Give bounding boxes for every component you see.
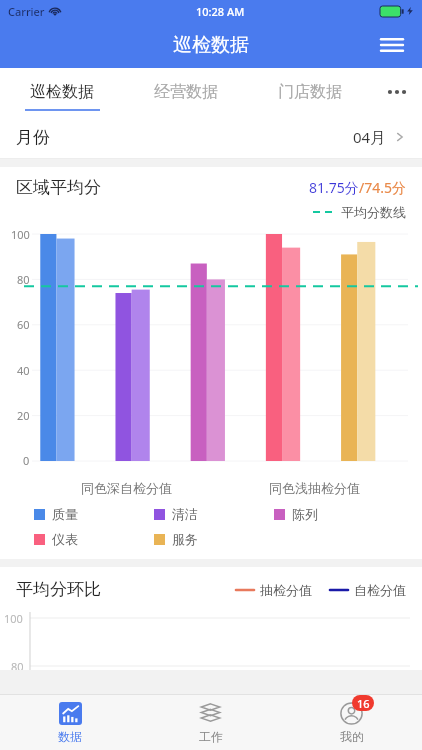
button[interactable]: 巡检数据 — [0, 68, 124, 115]
button[interactable]: 抽检分值 — [236, 582, 312, 598]
staticText: 服务 — [172, 531, 198, 547]
staticText: 陈列 — [292, 506, 318, 522]
staticText: 仪表 — [52, 531, 78, 547]
staticText: 门店数据 — [278, 82, 342, 102]
button[interactable]: 数据 — [0, 695, 140, 750]
staticText: 20 — [17, 408, 30, 423]
staticText: 清洁 — [172, 506, 198, 522]
staticText: Carrier — [8, 4, 45, 19]
button[interactable]: 服务 — [154, 531, 274, 547]
button[interactable]: 经营数据 — [124, 68, 248, 115]
staticText: 区域平均分 — [16, 177, 101, 198]
staticText: 0 — [23, 453, 30, 468]
button[interactable]: 门店数据 — [248, 68, 372, 115]
staticText: 60 — [17, 317, 30, 332]
button[interactable]: 工作 — [140, 695, 281, 750]
staticText: 巡检数据 — [173, 33, 249, 57]
staticText: 80 — [11, 659, 24, 670]
button[interactable]: 仪表 — [34, 531, 154, 547]
button[interactable]: 16 — [281, 695, 422, 750]
staticText: 平均分数线 — [341, 204, 406, 220]
staticText: 质量 — [52, 506, 78, 522]
staticText: 工作 — [199, 729, 223, 744]
button[interactable]: 月份 — [0, 115, 422, 159]
staticText: 04月 — [353, 127, 386, 147]
button[interactable]: 自检分值 — [330, 582, 406, 598]
staticText: 月份 — [16, 127, 50, 148]
staticText: 巡检数据 — [30, 82, 94, 102]
staticText: 81.75分 — [309, 178, 359, 197]
staticText: 平均分环比 — [16, 579, 101, 600]
staticText: 我的 — [340, 729, 364, 744]
staticText: 10:28 AM — [196, 4, 245, 19]
staticText: 自检分值 — [354, 582, 406, 598]
button[interactable]: More tabs — [372, 68, 422, 115]
staticText: 数据 — [58, 729, 82, 744]
staticText: 100 — [4, 611, 23, 626]
staticText: 抽检分值 — [260, 582, 312, 598]
staticText: 100 — [11, 227, 30, 242]
staticText: /74.5分 — [359, 178, 406, 197]
staticText: 经营数据 — [154, 82, 218, 102]
button[interactable]: Menu — [372, 25, 412, 65]
staticText: 80 — [17, 272, 30, 287]
button[interactable]: 陈列 — [274, 506, 422, 522]
staticText: 同色浅抽检分值 — [269, 480, 360, 496]
staticText: 同色深自检分值 — [81, 480, 172, 496]
button[interactable]: 质量 — [34, 506, 154, 522]
staticText: 16 — [357, 696, 370, 711]
button[interactable]: 清洁 — [154, 506, 274, 522]
staticText: 40 — [17, 363, 30, 378]
